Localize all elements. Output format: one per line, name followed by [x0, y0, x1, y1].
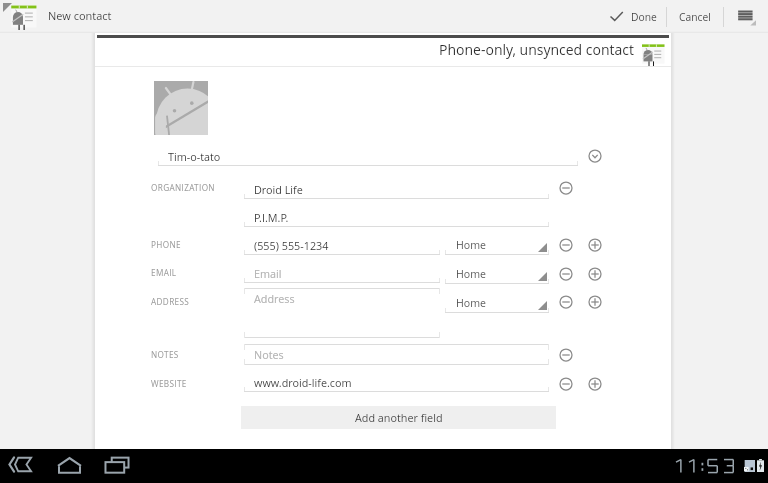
button[interactable]: Remove field	[557, 236, 575, 254]
button[interactable]	[244, 208, 549, 227]
staticText: Notes	[254, 347, 284, 362]
button[interactable]: Remove field	[557, 293, 575, 311]
button[interactable]: Recent apps	[105, 457, 129, 473]
staticText: P.I.M.P.	[254, 210, 289, 225]
button[interactable]: Add another field	[241, 406, 556, 429]
button[interactable]: Back	[9, 456, 32, 473]
button[interactable]	[158, 147, 578, 166]
staticText: ORGANIZATION	[151, 182, 215, 193]
staticText: New contact	[48, 8, 112, 23]
staticText: Droid Life	[254, 182, 303, 197]
staticText: NOTES	[151, 349, 179, 360]
button[interactable]: Remove field	[557, 375, 575, 393]
staticText: EMAIL	[151, 267, 177, 278]
button[interactable]: More options	[724, 0, 768, 33]
button[interactable]: Home	[57, 457, 82, 474]
button[interactable]: Add field	[586, 375, 604, 393]
staticText: Email	[254, 266, 282, 281]
button[interactable]: Address	[244, 288, 440, 338]
staticText: (555) 555-1234	[254, 238, 329, 253]
button[interactable]: Add field	[586, 236, 604, 254]
button[interactable]: Remove field	[557, 346, 575, 364]
staticText: ADDRESS	[151, 296, 190, 307]
button[interactable]: Label type: Home	[445, 294, 549, 313]
button[interactable]	[244, 373, 549, 392]
staticText: Home	[456, 296, 487, 310]
button[interactable]: Remove field	[557, 179, 575, 197]
staticText: Phone-only, unsynced contact	[439, 40, 634, 59]
staticText: www.droid-life.com	[254, 375, 352, 390]
staticText: Address	[254, 291, 295, 306]
button[interactable]: Add field	[586, 293, 604, 311]
staticText: Home	[456, 238, 487, 252]
staticText: Add another field	[355, 410, 443, 425]
button[interactable]: Cancel	[667, 0, 723, 33]
button[interactable]: Done	[600, 0, 666, 33]
staticText: Cancel	[679, 10, 711, 24]
staticText: PHONE	[151, 239, 181, 250]
button[interactable]: Add field	[586, 265, 604, 283]
staticText: Home	[456, 267, 487, 281]
button[interactable]	[244, 180, 549, 199]
button[interactable]: Add contact photo	[154, 81, 208, 135]
button[interactable]: Label type: Home	[445, 265, 549, 284]
staticText: WEBSITE	[151, 378, 187, 389]
staticText: Done	[631, 10, 657, 24]
button[interactable]	[244, 236, 440, 255]
button[interactable]: Label type: Home	[445, 236, 549, 255]
button[interactable]: Remove field	[557, 265, 575, 283]
button[interactable]: Notes	[244, 344, 549, 365]
button[interactable]: Expand name fields	[586, 147, 604, 165]
staticText: Tim-o-tato	[168, 149, 221, 164]
button[interactable]	[244, 264, 440, 283]
button[interactable]: Contacts app	[9, 4, 37, 30]
